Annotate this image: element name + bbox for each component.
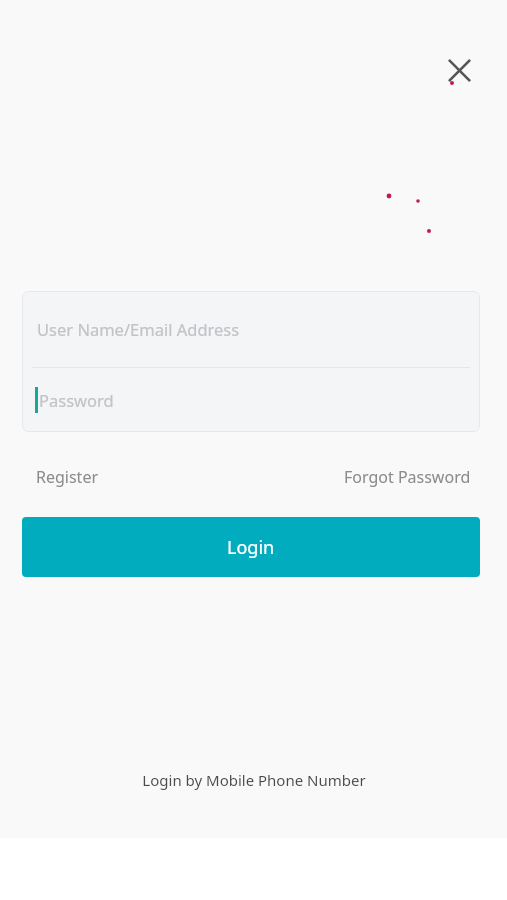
staticText: Login by Mobile Phone Number: [142, 770, 366, 790]
button[interactable]: Password: [22, 368, 480, 432]
button[interactable]: User Name/Email Address: [22, 291, 480, 367]
staticText: Password: [39, 389, 114, 411]
button[interactable]: Close: [435, 46, 483, 94]
button[interactable]: Login: [22, 517, 480, 577]
staticText: User Name/Email Address: [37, 318, 240, 340]
button[interactable]: Register: [22, 458, 113, 496]
button[interactable]: Forgot Password: [330, 458, 485, 496]
staticText: Register: [36, 466, 99, 488]
staticText: Login: [227, 535, 275, 560]
button[interactable]: Login by Mobile Phone Number: [122, 762, 386, 798]
staticText: Forgot Password: [344, 466, 471, 488]
